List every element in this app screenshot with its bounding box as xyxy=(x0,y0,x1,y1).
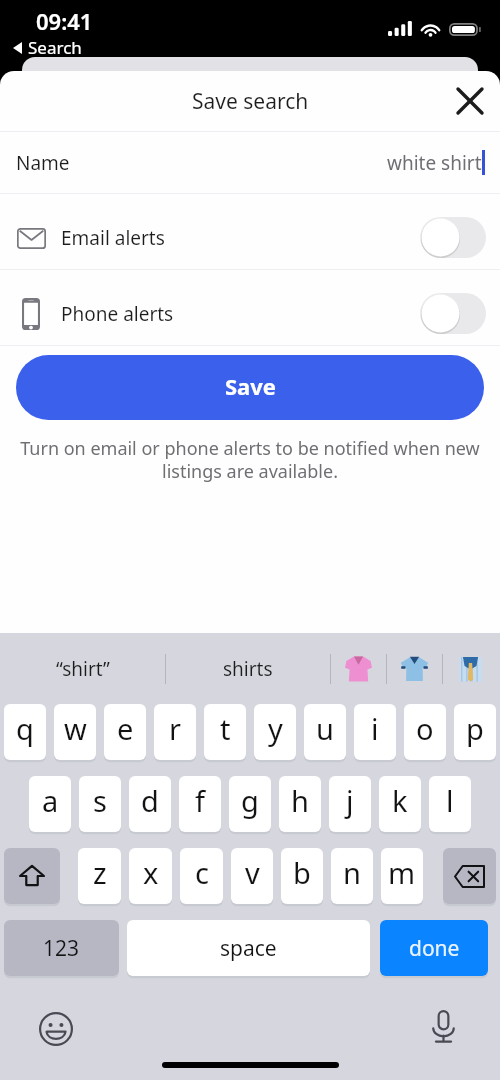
button[interactable]: Shift xyxy=(4,848,60,904)
button[interactable]: u xyxy=(304,704,346,760)
button[interactable]: Backspace xyxy=(443,848,496,904)
staticText: o xyxy=(416,709,434,748)
staticText: 123 xyxy=(43,934,80,963)
staticText: shirts xyxy=(223,656,273,682)
staticText: space xyxy=(220,934,277,963)
staticText: 09:41 xyxy=(36,6,93,36)
button[interactable]: 123 xyxy=(4,920,119,976)
staticText: h xyxy=(291,781,309,820)
staticText: t xyxy=(220,709,231,748)
staticText: r xyxy=(169,709,181,748)
staticText: done xyxy=(409,934,460,963)
button[interactable]: shirts xyxy=(166,633,330,704)
button[interactable]: y xyxy=(254,704,296,760)
button[interactable]: Emoji suggestion xyxy=(387,633,442,704)
staticText: g xyxy=(241,781,259,820)
staticText: s xyxy=(93,781,107,820)
button[interactable]: d xyxy=(129,776,171,832)
button[interactable]: done xyxy=(380,920,488,976)
staticText: b xyxy=(293,853,311,892)
button[interactable]: Name xyxy=(0,132,500,193)
staticText: Phone alerts xyxy=(61,301,174,327)
staticText: u xyxy=(316,709,334,748)
button[interactable]: “shirt” xyxy=(0,633,165,704)
staticText: n xyxy=(343,853,361,892)
staticText: q xyxy=(16,709,34,748)
button[interactable]: r xyxy=(154,704,196,760)
button[interactable]: Emoji suggestion xyxy=(331,633,386,704)
staticText: f xyxy=(195,781,205,820)
button[interactable]: Toggle alerts xyxy=(420,293,486,334)
button[interactable]: c xyxy=(180,848,223,904)
staticText: l xyxy=(446,781,454,820)
staticText: c xyxy=(195,853,209,892)
staticText: k xyxy=(392,781,408,820)
staticText: Name xyxy=(16,150,70,176)
staticText: y xyxy=(268,709,283,748)
staticText: d xyxy=(141,781,159,820)
staticText: e xyxy=(117,709,134,748)
staticText: a xyxy=(42,781,59,820)
staticText: z xyxy=(93,853,107,892)
staticText: Save xyxy=(225,371,276,401)
button[interactable]: w xyxy=(54,704,96,760)
button[interactable]: b xyxy=(281,848,323,904)
button[interactable]: i xyxy=(354,704,396,760)
staticText: m xyxy=(388,853,416,892)
button[interactable]: v xyxy=(231,848,273,904)
staticText: x xyxy=(143,853,159,892)
staticText: j xyxy=(346,781,354,820)
button[interactable]: Email alerts xyxy=(0,194,500,269)
button[interactable]: Emoji suggestion xyxy=(443,633,498,704)
button[interactable]: Back to Search xyxy=(13,36,82,59)
staticText: v xyxy=(245,853,260,892)
button[interactable]: e xyxy=(104,704,146,760)
button[interactable]: x xyxy=(129,848,172,904)
button[interactable]: l xyxy=(429,776,471,832)
button[interactable]: q xyxy=(4,704,46,760)
button[interactable]: f xyxy=(179,776,221,832)
button[interactable]: Close xyxy=(447,78,493,124)
button[interactable]: space xyxy=(127,920,370,976)
button[interactable]: Phone alerts xyxy=(0,270,500,345)
staticText: Save search xyxy=(192,87,309,116)
staticText: white shirt xyxy=(387,150,482,176)
button[interactable]: o xyxy=(404,704,446,760)
staticText: Turn on email or phone alerts to be noti… xyxy=(14,436,486,483)
button[interactable]: Emoji keyboard xyxy=(33,1006,78,1051)
button[interactable]: z xyxy=(78,848,121,904)
button[interactable]: p xyxy=(454,704,496,760)
button[interactable]: n xyxy=(331,848,373,904)
staticText: “shirt” xyxy=(56,656,110,682)
button[interactable]: h xyxy=(279,776,321,832)
staticText: w xyxy=(64,709,87,748)
staticText: Email alerts xyxy=(61,225,165,251)
staticText: i xyxy=(371,709,379,748)
button[interactable]: Dictate xyxy=(421,1004,466,1049)
staticText: Search xyxy=(28,36,82,59)
button[interactable]: s xyxy=(79,776,121,832)
button[interactable]: a xyxy=(29,776,71,832)
button[interactable]: Toggle alerts xyxy=(420,217,486,258)
button[interactable]: g xyxy=(229,776,271,832)
button[interactable]: t xyxy=(204,704,246,760)
staticText: p xyxy=(466,709,484,748)
button[interactable]: Save xyxy=(16,355,484,420)
button[interactable]: k xyxy=(379,776,421,832)
button[interactable]: j xyxy=(329,776,371,832)
button[interactable]: m xyxy=(381,848,423,904)
